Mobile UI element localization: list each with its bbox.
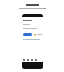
button[interactable]	[23, 33, 32, 36]
